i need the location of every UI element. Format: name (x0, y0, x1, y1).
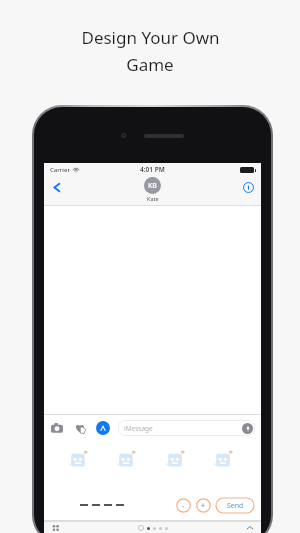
button[interactable]: Details (239, 178, 257, 196)
staticText: - (182, 501, 185, 511)
staticText: Carrier (50, 166, 70, 174)
button[interactable] (212, 447, 238, 473)
staticText: Design Your Own (81, 26, 220, 49)
button[interactable]: Decrease (176, 498, 191, 513)
button[interactable]: App grid (50, 522, 62, 533)
button[interactable] (67, 447, 93, 473)
button[interactable]: KB (144, 177, 161, 202)
button[interactable]: Dictate (242, 423, 253, 434)
button[interactable]: iMessage (118, 420, 255, 436)
staticText: + (201, 501, 206, 511)
staticText: KB (148, 181, 157, 191)
button[interactable]: Digital Touch (73, 421, 87, 435)
button[interactable]: App Store (96, 421, 110, 435)
staticText: Send (227, 501, 244, 511)
button[interactable] (115, 447, 141, 473)
button[interactable]: Camera (50, 421, 64, 435)
staticText: iMessage (124, 424, 153, 433)
button[interactable]: Increase (196, 498, 211, 513)
staticText: Kate (147, 195, 159, 202)
button[interactable]: Send (216, 498, 254, 513)
staticText: 4:01 PM (140, 165, 165, 174)
button[interactable] (164, 447, 190, 473)
button[interactable]: Expand (244, 522, 256, 533)
staticText: Game (126, 53, 174, 76)
button[interactable]: Back (48, 178, 66, 196)
